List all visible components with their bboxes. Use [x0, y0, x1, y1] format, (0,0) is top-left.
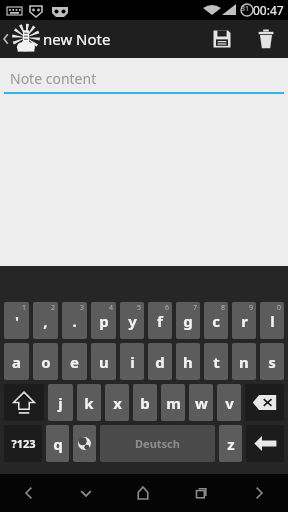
- button[interactable]: Hide keyboard: [57, 474, 114, 512]
- button[interactable]: y: [120, 302, 144, 339]
- button[interactable]: o: [33, 343, 58, 380]
- other: Up: [1, 29, 11, 49]
- button[interactable]: Deutsch: [100, 425, 215, 462]
- staticText: 00:47: [253, 2, 284, 18]
- button[interactable]: a: [4, 343, 29, 380]
- button[interactable]: l: [260, 302, 284, 339]
- button[interactable]: g: [176, 302, 200, 339]
- staticText: 8: [221, 303, 226, 313]
- staticText: w: [195, 393, 208, 413]
- button[interactable]: Note content: [0, 64, 288, 92]
- staticText: z: [227, 434, 235, 454]
- button[interactable]: .: [62, 302, 87, 339]
- staticText: y: [128, 311, 137, 331]
- button[interactable]: b: [133, 384, 157, 421]
- staticText: ': [15, 311, 19, 331]
- staticText: s: [268, 352, 276, 372]
- staticText: g: [183, 311, 193, 331]
- staticText: t: [213, 352, 220, 372]
- button[interactable]: Save: [200, 20, 244, 58]
- button[interactable]: Recents: [172, 474, 230, 512]
- staticText: 31: [241, 4, 250, 14]
- button[interactable]: j: [48, 384, 73, 421]
- staticText: r: [241, 311, 248, 331]
- button[interactable]: s: [260, 343, 284, 380]
- button[interactable]: Home: [114, 474, 172, 512]
- staticText: 3: [80, 303, 85, 313]
- button[interactable]: d: [148, 343, 172, 380]
- button[interactable]: r: [232, 302, 256, 339]
- button[interactable]: Up: [0, 24, 115, 54]
- button[interactable]: i: [120, 343, 144, 380]
- button[interactable]: Backspace: [245, 384, 284, 421]
- staticText: 9: [249, 303, 254, 313]
- staticText: m: [166, 393, 181, 413]
- staticText: d: [155, 352, 165, 372]
- staticText: a: [12, 352, 21, 372]
- button[interactable]: x: [105, 384, 129, 421]
- staticText: e: [70, 352, 79, 372]
- staticText: 1: [22, 303, 27, 313]
- button[interactable]: f: [148, 302, 172, 339]
- staticText: k: [84, 393, 94, 413]
- staticText: c: [212, 311, 220, 331]
- staticText: u: [99, 352, 109, 372]
- button[interactable]: ': [4, 302, 29, 339]
- button[interactable]: Forward: [230, 474, 288, 512]
- staticText: b: [140, 393, 150, 413]
- button[interactable]: v: [217, 384, 241, 421]
- staticText: i: [130, 352, 135, 372]
- staticText: 0: [277, 303, 282, 313]
- staticText: l: [270, 311, 275, 331]
- staticText: h: [183, 352, 193, 372]
- staticText: 6: [165, 303, 170, 313]
- staticText: n: [239, 352, 249, 372]
- staticText: 5: [137, 303, 142, 313]
- staticText: p: [99, 311, 109, 331]
- button[interactable]: p: [91, 302, 116, 339]
- button[interactable]: k: [77, 384, 101, 421]
- button[interactable]: u: [91, 343, 116, 380]
- button[interactable]: ?123: [4, 425, 42, 462]
- staticText: f: [157, 311, 163, 331]
- button[interactable]: e: [62, 343, 87, 380]
- staticText: q: [53, 434, 63, 454]
- button[interactable]: z: [219, 425, 242, 462]
- staticText: .: [72, 311, 77, 331]
- button[interactable]: Delete: [244, 20, 288, 58]
- button[interactable]: Enter: [246, 425, 284, 462]
- staticText: 4: [109, 303, 114, 313]
- button[interactable]: n: [232, 343, 256, 380]
- button[interactable]: t: [204, 343, 228, 380]
- button[interactable]: Change language: [73, 425, 96, 462]
- button[interactable]: m: [161, 384, 185, 421]
- staticText: Deutsch: [135, 436, 180, 451]
- staticText: 2: [51, 303, 56, 313]
- button[interactable]: Shift: [4, 384, 44, 421]
- staticText: o: [41, 352, 51, 372]
- staticText: v: [225, 393, 234, 413]
- staticText: j: [58, 393, 63, 413]
- button[interactable]: Back: [0, 474, 57, 512]
- button[interactable]: ,: [33, 302, 58, 339]
- staticText: ?123: [11, 436, 36, 451]
- staticText: ,: [43, 311, 48, 331]
- staticText: 7: [193, 303, 198, 313]
- staticText: x: [113, 393, 122, 413]
- button[interactable]: w: [189, 384, 213, 421]
- staticText: Note content: [10, 69, 97, 88]
- button[interactable]: h: [176, 343, 200, 380]
- button[interactable]: c: [204, 302, 228, 339]
- button[interactable]: q: [46, 425, 69, 462]
- staticText: new Note: [43, 29, 111, 49]
